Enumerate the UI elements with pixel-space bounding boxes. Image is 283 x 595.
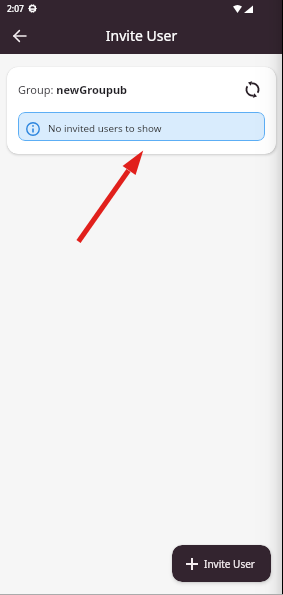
staticText: 2:07 (7, 3, 24, 15)
staticText: Group: newGroupub (18, 82, 128, 97)
button[interactable]: Refresh (240, 77, 264, 101)
staticText: Invite User (204, 557, 255, 571)
button[interactable]: Back (6, 22, 34, 50)
staticText: Invite User (0, 26, 283, 45)
staticText: No invited users to show (48, 122, 162, 135)
button[interactable]: Invite User (172, 545, 271, 582)
